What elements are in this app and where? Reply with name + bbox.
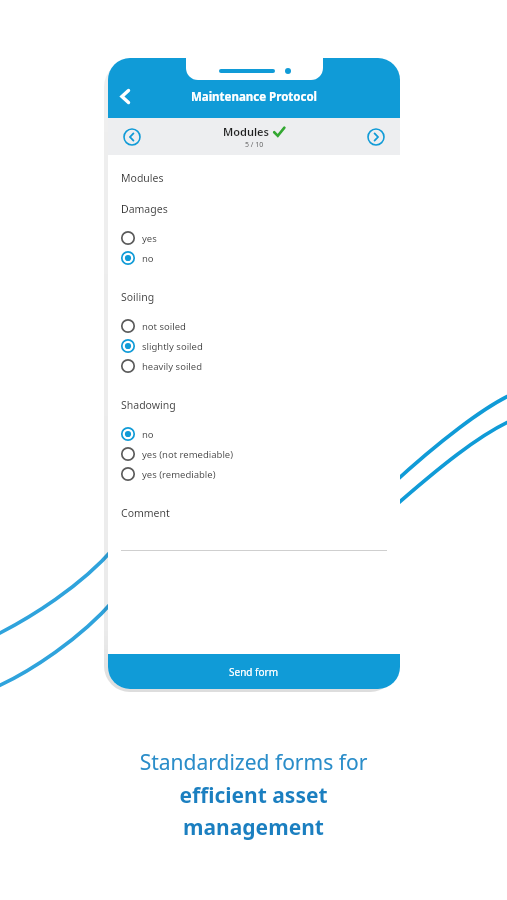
staticText: Soiling	[121, 290, 155, 304]
button[interactable]: no	[121, 248, 387, 268]
staticText: Standardized forms for	[0, 748, 507, 777]
button[interactable]: yes (remediable)	[121, 464, 387, 484]
button[interactable]: yes (not remediable)	[121, 444, 387, 464]
staticText: Modules	[223, 124, 269, 139]
staticText: yes (not remediable)	[142, 448, 234, 461]
staticText: management	[0, 813, 507, 842]
staticText: efficient asset	[0, 781, 507, 810]
staticText: 5 / 10	[245, 140, 264, 150]
button[interactable]: Next module	[365, 126, 387, 148]
button[interactable]: Back	[108, 79, 142, 113]
staticText: no	[142, 252, 154, 265]
button[interactable]: not soiled	[121, 316, 387, 336]
button[interactable]: heavily soiled	[121, 356, 387, 376]
staticText: Modules	[121, 171, 164, 185]
staticText: yes (remediable)	[142, 468, 216, 481]
button[interactable]: no	[121, 424, 387, 444]
button[interactable]: yes	[121, 228, 387, 248]
button[interactable]: Previous module	[121, 126, 143, 148]
button[interactable]: Send form	[108, 654, 400, 689]
staticText: heavily soiled	[142, 360, 203, 373]
staticText: Shadowing	[121, 398, 176, 412]
staticText: Maintenance Protocol	[108, 89, 400, 105]
staticText: Send form	[229, 665, 279, 679]
staticText: Comment	[121, 506, 170, 520]
staticText: yes	[142, 232, 157, 245]
button[interactable]: slightly soiled	[121, 336, 387, 356]
staticText: Damages	[121, 202, 168, 216]
staticText: no	[142, 428, 154, 441]
staticText: slightly soiled	[142, 340, 203, 353]
staticText: not soiled	[142, 320, 186, 333]
